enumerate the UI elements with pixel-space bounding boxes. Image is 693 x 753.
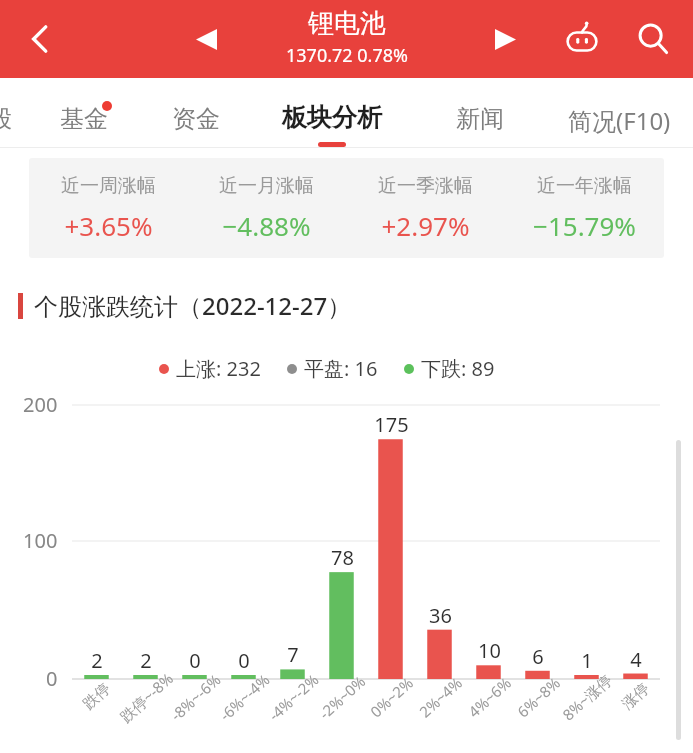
button[interactable]: 下跌: 89 <box>404 355 495 382</box>
staticText: 6 <box>532 643 544 670</box>
button[interactable]: 平盘: 16 <box>287 355 378 382</box>
staticText: +3.65% <box>64 208 153 243</box>
staticText: 4 <box>630 646 642 673</box>
staticText: 78 <box>331 544 354 571</box>
staticText: 板块分析 <box>282 102 382 133</box>
staticText: -6%~-4% <box>215 669 274 725</box>
staticText: 上涨: 232 <box>176 355 261 382</box>
button[interactable]: Previous sector <box>182 15 230 63</box>
button[interactable]: 板块分析 <box>278 98 386 151</box>
staticText: 2 <box>140 647 152 674</box>
staticText: 0 <box>46 665 58 692</box>
staticText: 8%~涨停 <box>558 669 616 724</box>
button[interactable]: 简况(F10) <box>564 100 675 141</box>
staticText: 资金 <box>172 104 220 134</box>
staticText: 6%~8% <box>513 672 564 721</box>
staticText: 200 <box>23 391 58 418</box>
button[interactable]: 基金 <box>56 100 112 138</box>
staticText: 近一月涨幅 <box>219 174 314 198</box>
staticText: 下跌: 89 <box>421 355 495 382</box>
staticText: −15.79% <box>533 208 636 243</box>
button[interactable]: 上涨: 232 <box>159 355 261 382</box>
staticText: 0 <box>189 647 201 674</box>
button[interactable]: 新闻 <box>452 100 508 138</box>
staticText: 近一季涨幅 <box>378 174 473 198</box>
staticText: 近一年涨幅 <box>537 174 632 198</box>
button[interactable]: 近一年涨幅 <box>505 174 664 243</box>
staticText: 涨停 <box>618 679 653 714</box>
staticText: 0 <box>238 647 250 674</box>
staticText: 4%~6% <box>464 672 515 721</box>
button[interactable]: Search <box>625 11 681 67</box>
button[interactable]: 股 <box>0 100 16 138</box>
staticText: 锂电池 <box>308 7 386 40</box>
staticText: 2 <box>91 647 103 674</box>
staticText: 7 <box>287 641 299 668</box>
staticText: 新闻 <box>456 104 504 134</box>
staticText: 10 <box>478 637 501 664</box>
button[interactable]: AI assistant <box>555 12 609 66</box>
staticText: 175 <box>374 411 409 438</box>
staticText: 跌停 <box>79 679 114 714</box>
staticText: -2%~0% <box>314 671 369 723</box>
staticText: 0%~2% <box>366 672 417 721</box>
button[interactable]: Back <box>12 11 68 67</box>
staticText: 基金 <box>60 104 108 134</box>
button[interactable]: 资金 <box>168 100 224 138</box>
staticText: 近一周涨幅 <box>61 174 156 198</box>
staticText: −4.88% <box>222 208 311 243</box>
staticText: 平盘: 16 <box>304 355 378 382</box>
staticText: -8%~-6% <box>166 669 225 725</box>
staticText: 2%~4% <box>415 672 466 721</box>
staticText: 个股涨跌统计（2022-12-27） <box>34 289 352 322</box>
staticText: 股 <box>0 104 12 134</box>
staticText: 1370.72 0.78% <box>286 43 408 68</box>
button[interactable]: 近一季涨幅 <box>346 174 505 243</box>
staticText: 简况(F10) <box>568 104 671 137</box>
button[interactable]: Next sector <box>481 15 529 63</box>
staticText: -4%~-2% <box>264 669 323 725</box>
button[interactable]: 近一周涨幅 <box>29 174 187 243</box>
staticText: 36 <box>429 602 452 629</box>
staticText: 1 <box>581 647 593 674</box>
button[interactable]: 近一月涨幅 <box>187 174 346 243</box>
staticText: 跌停~-8% <box>116 668 177 726</box>
staticText: 100 <box>23 527 58 554</box>
staticText: +2.97% <box>381 208 470 243</box>
